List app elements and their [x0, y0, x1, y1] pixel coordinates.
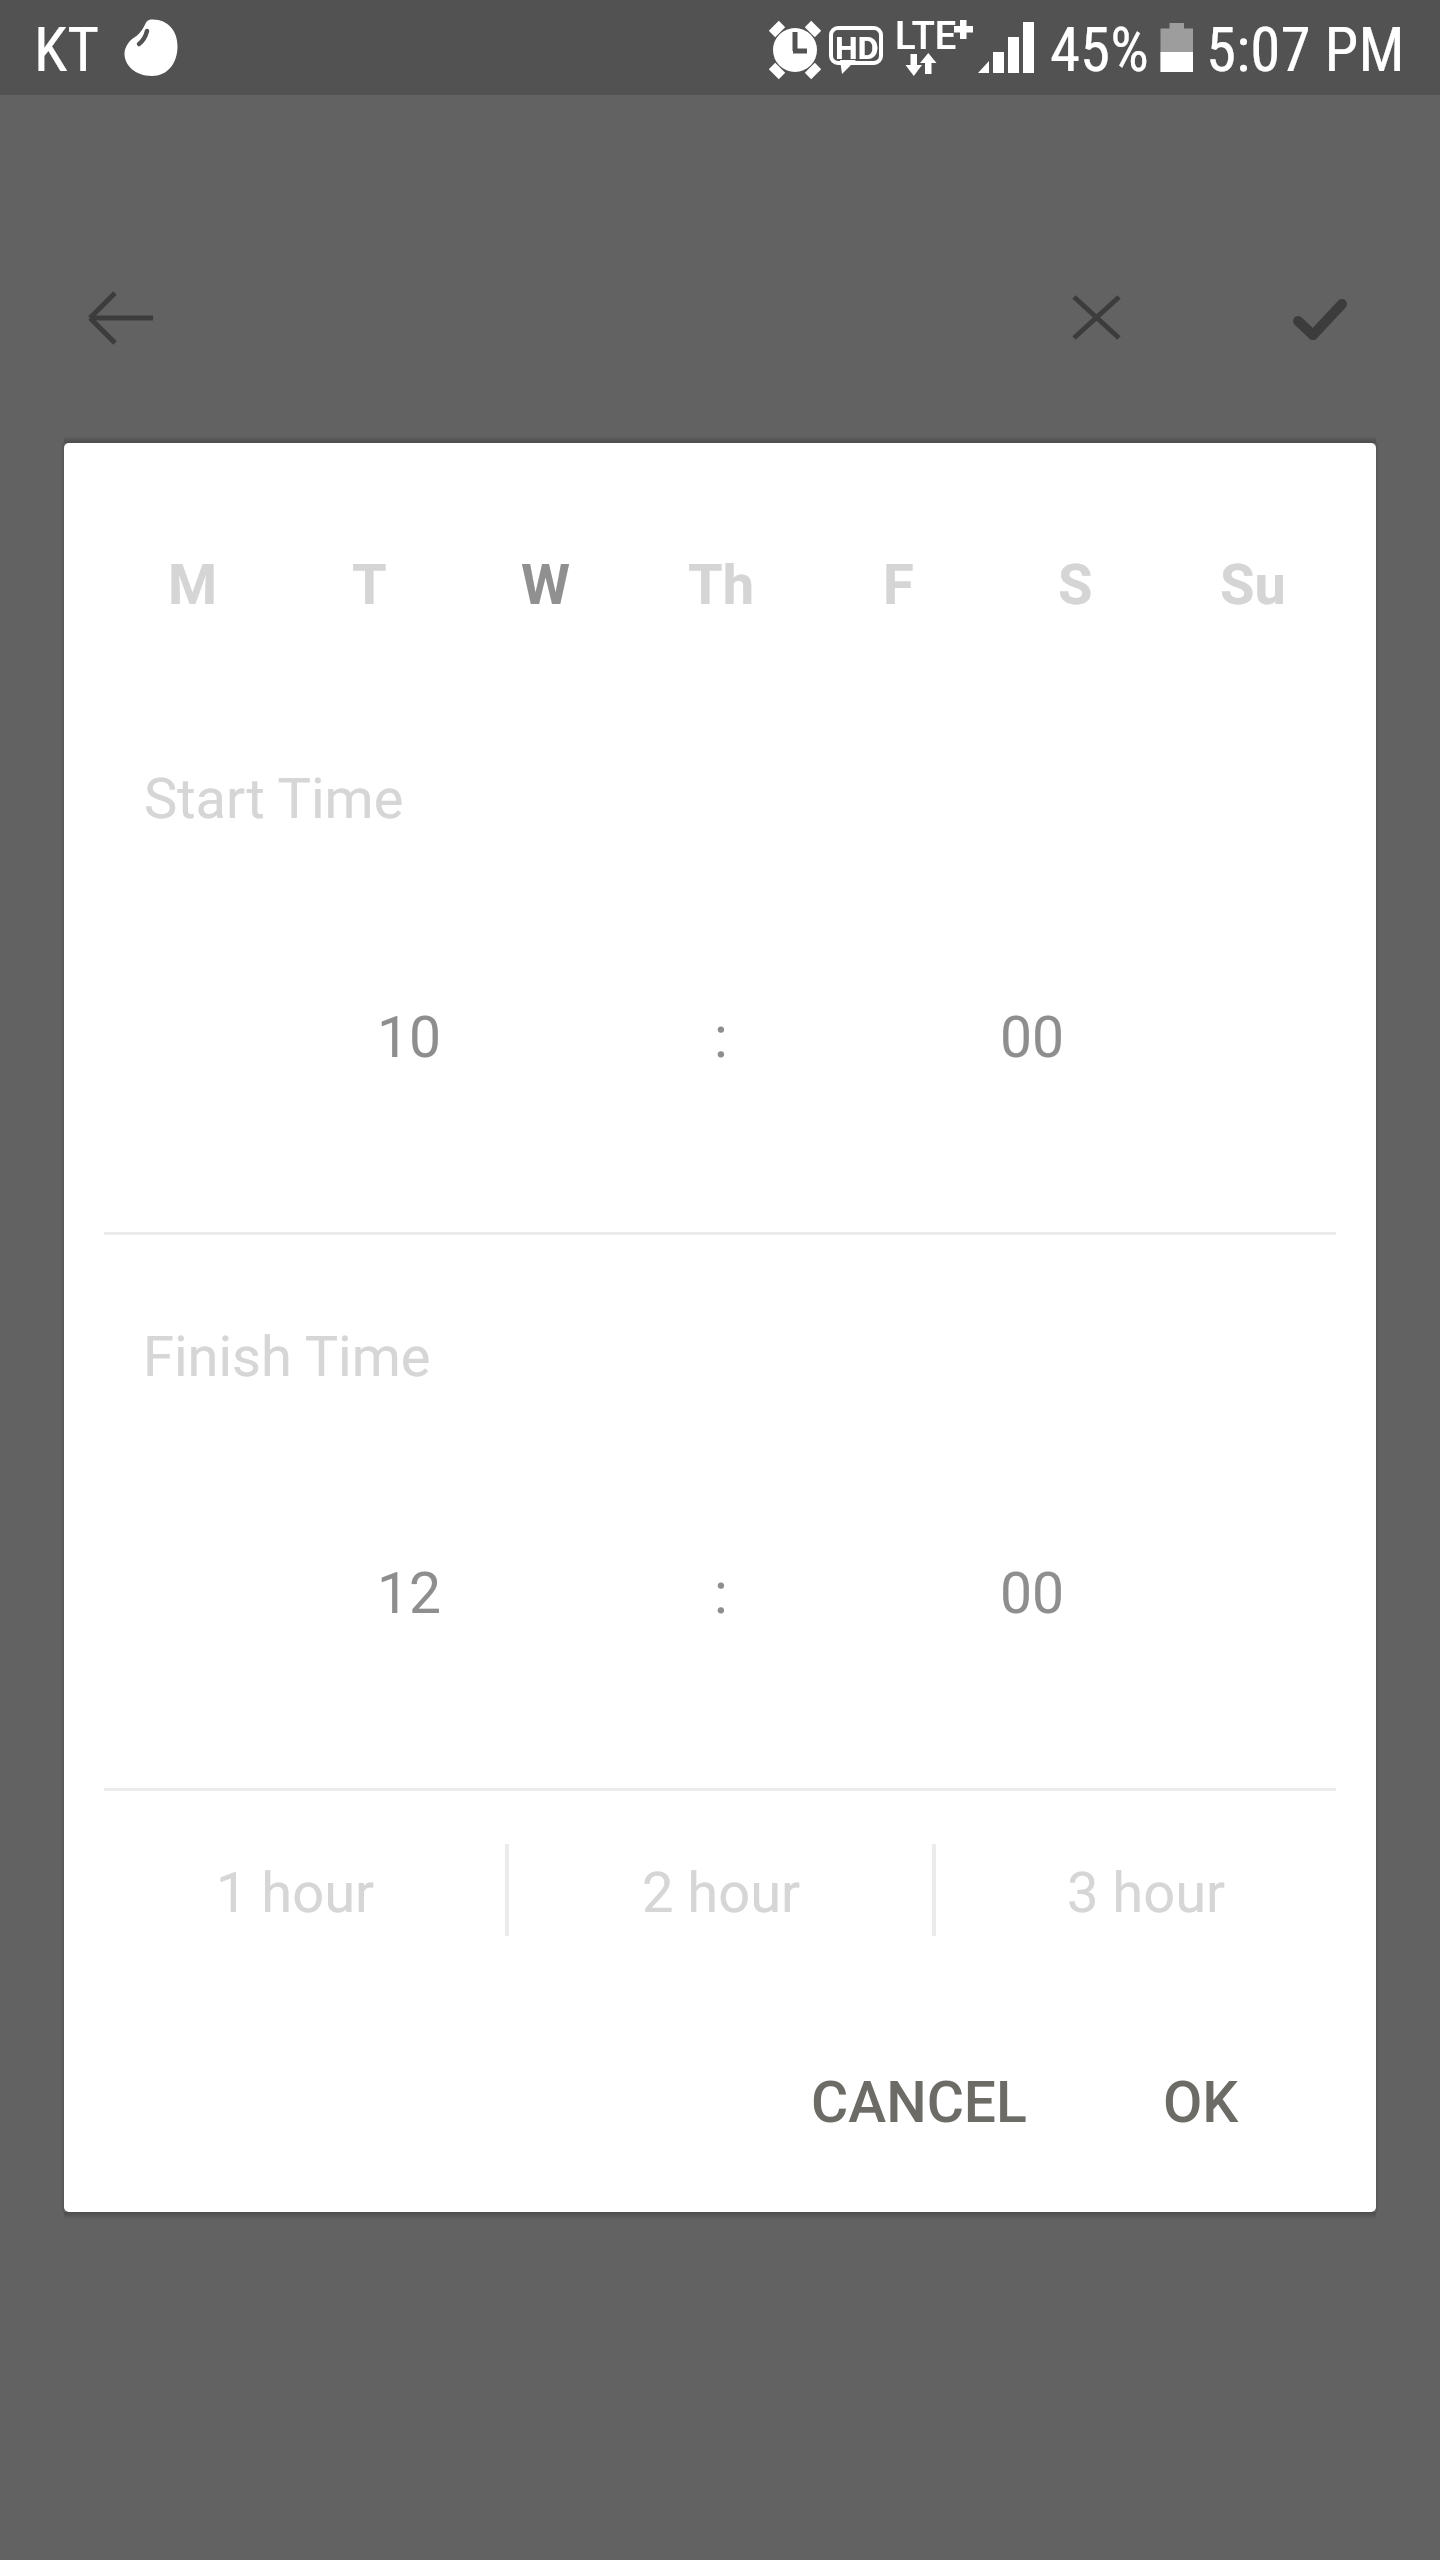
staticText: CANCEL [811, 2069, 1027, 2136]
staticText: 00 [1000, 1560, 1065, 1627]
staticText: F [883, 552, 914, 618]
staticText: T [352, 552, 387, 618]
staticText: Su [1220, 552, 1286, 618]
staticText: 3 hour [1067, 1860, 1225, 1926]
button[interactable]: OK [1125, 2050, 1277, 2154]
button[interactable]: M [105, 530, 281, 640]
staticText: 00 [1000, 1004, 1065, 1071]
staticText: M [168, 552, 218, 618]
button[interactable]: Clear [1058, 282, 1138, 360]
staticText: S [1058, 552, 1093, 618]
button[interactable]: T [281, 530, 457, 640]
staticText: 5:07 PM [1206, 14, 1405, 85]
button[interactable]: 12 [319, 1553, 499, 1633]
button[interactable]: 3 hour [933, 1818, 1358, 1968]
button[interactable]: F [810, 530, 987, 640]
button[interactable]: W [457, 530, 633, 640]
staticText: KT [34, 14, 100, 85]
staticText: Th [688, 552, 755, 618]
button[interactable]: Su [1164, 530, 1341, 640]
button[interactable]: S [987, 530, 1164, 640]
button[interactable]: Th [633, 530, 810, 640]
staticText: W [521, 552, 570, 618]
staticText: 1 hour [216, 1860, 374, 1926]
button[interactable]: Done [1278, 281, 1362, 359]
button[interactable]: CANCEL [776, 2050, 1061, 2154]
staticText: OK [1163, 2069, 1239, 2136]
staticText: 2 hour [642, 1860, 800, 1926]
button[interactable]: 00 [942, 1553, 1122, 1633]
staticText: LTE [895, 14, 957, 59]
staticText: : [714, 1560, 728, 1627]
button[interactable]: 1 hour [82, 1818, 508, 1968]
staticText: 45% [1050, 14, 1149, 85]
button[interactable]: 00 [942, 997, 1122, 1077]
staticText: : [714, 1004, 728, 1071]
staticText: 12 [377, 1560, 442, 1627]
staticText: HD [835, 29, 879, 67]
button[interactable]: 10 [319, 997, 499, 1077]
button[interactable]: 2 hour [508, 1818, 933, 1968]
staticText: 10 [377, 1004, 442, 1071]
button[interactable]: Navigate up [76, 281, 172, 361]
staticText: Finish Time [143, 1324, 431, 1390]
staticText: Start Time [144, 766, 404, 832]
